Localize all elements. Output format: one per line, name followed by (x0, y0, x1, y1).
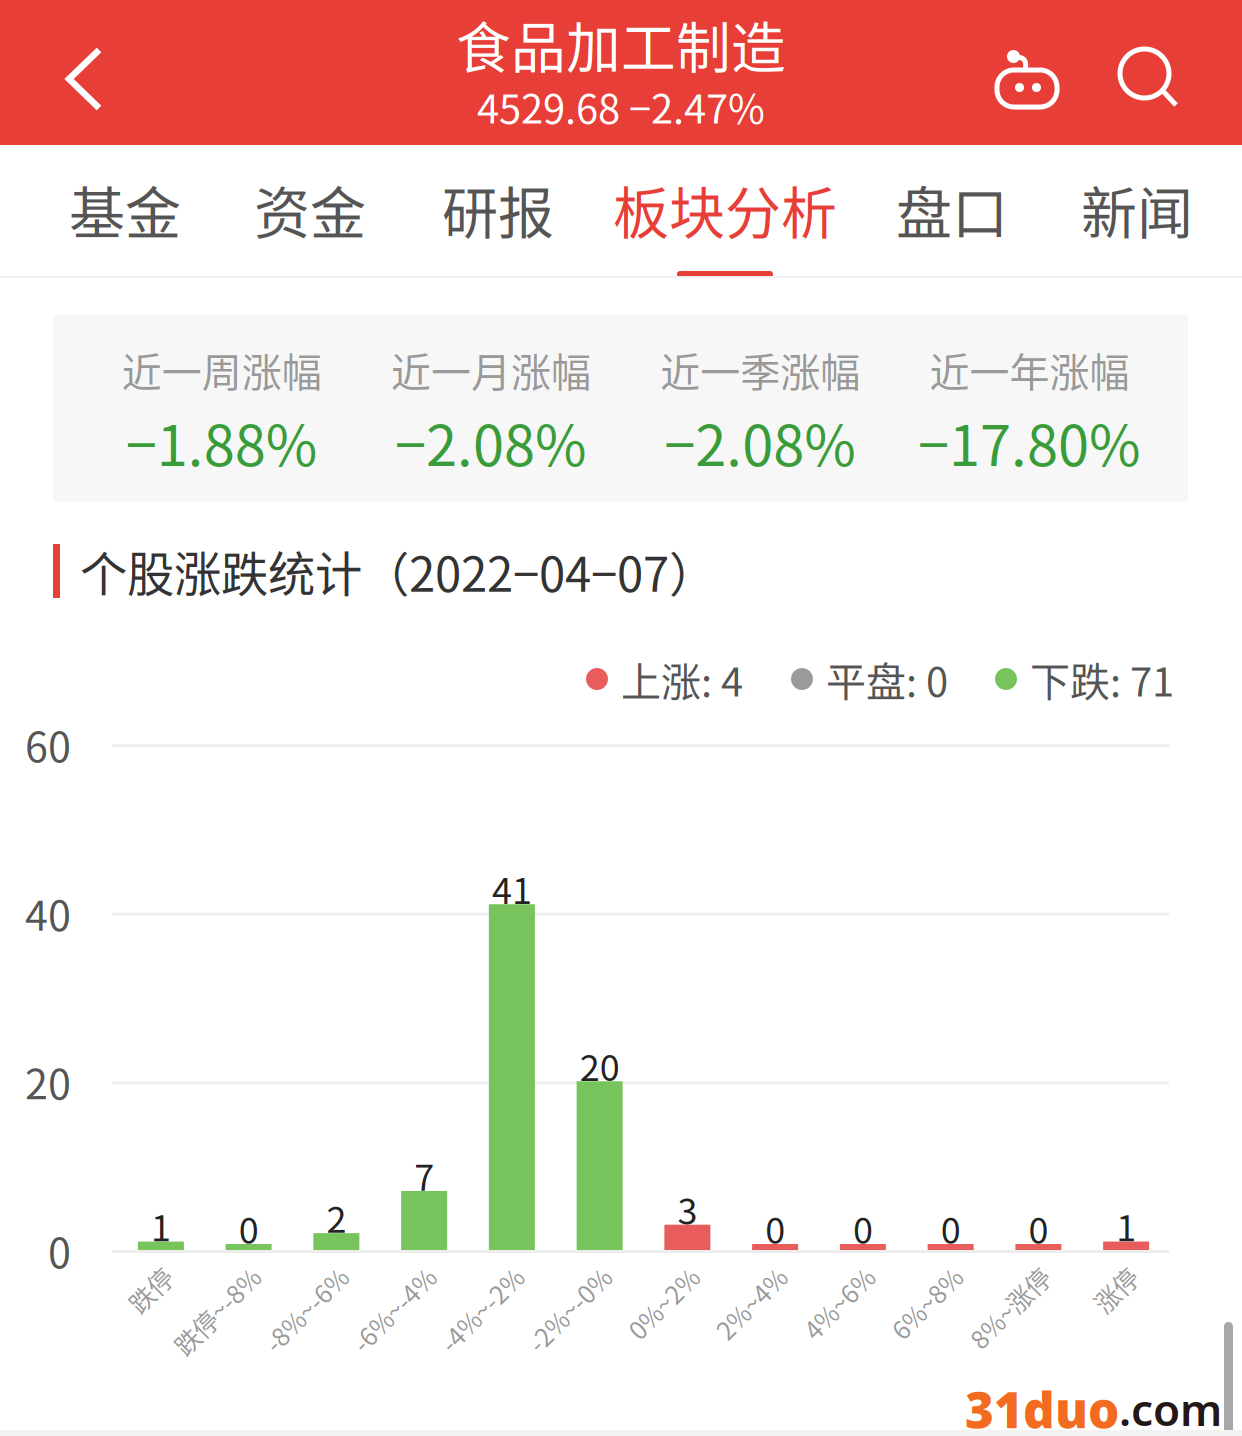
staticText: 近一季涨幅 (660, 340, 860, 398)
staticText: -2%~-0% (501, 1254, 607, 1290)
staticText: -4%~-2% (413, 1254, 519, 1290)
staticText: −2.08% (395, 401, 587, 482)
staticText: 20 (25, 1051, 71, 1111)
staticText: 跌停~-8% (146, 1254, 256, 1290)
button[interactable]: Back (0, 0, 128, 145)
staticText: 7 (414, 1149, 434, 1201)
button[interactable]: 资金 (220, 145, 400, 276)
staticText: 下跌: 71 (1030, 650, 1174, 708)
staticText: 研报 (442, 168, 554, 250)
staticText: 8%~涨停 (944, 1254, 1045, 1290)
staticText: 个股涨跌统计（2022−04−07） (80, 537, 716, 605)
staticText: −2.08% (664, 401, 856, 482)
staticText: 4%~6% (782, 1254, 870, 1290)
staticText: .com (1119, 1380, 1222, 1436)
staticText: 40 (25, 883, 71, 943)
staticText: 0 (1028, 1202, 1048, 1254)
staticText: 0 (941, 1202, 961, 1254)
staticText: 0%~2% (606, 1254, 694, 1290)
staticText: 跌停 (118, 1254, 168, 1290)
button[interactable]: Search (1098, 0, 1222, 145)
staticText: 食品加工制造 (456, 4, 786, 84)
button[interactable]: 基金 (35, 145, 215, 276)
staticText: 近一周涨幅 (122, 340, 322, 398)
staticText: 2 (326, 1191, 346, 1243)
staticText: 板块分析 (613, 168, 837, 250)
staticText: 20 (580, 1039, 620, 1091)
staticText: 60 (25, 714, 71, 774)
button[interactable]: 盘口 (862, 145, 1042, 276)
staticText: 41 (492, 862, 532, 914)
staticText: 平盘: 0 (826, 650, 948, 708)
button[interactable]: 新闻 (1047, 145, 1227, 276)
staticText: 1 (151, 1199, 171, 1252)
staticText: 1 (1116, 1199, 1136, 1252)
staticText: -6%~-4% (325, 1254, 431, 1290)
staticText: 资金 (254, 168, 366, 250)
staticText: 2%~4% (694, 1254, 782, 1290)
staticText: 基金 (69, 168, 181, 250)
staticText: 新闻 (1081, 168, 1193, 250)
staticText: 0 (853, 1202, 873, 1254)
button[interactable]: Assistant (976, 0, 1078, 145)
staticText: 0 (48, 1220, 71, 1280)
button[interactable]: 研报 (408, 145, 588, 276)
staticText: -8%~-6% (237, 1254, 343, 1290)
staticText: −17.80% (918, 401, 1141, 482)
staticText: 近一月涨幅 (391, 340, 591, 398)
staticText: 0 (765, 1202, 785, 1254)
staticText: 盘口 (896, 168, 1008, 250)
staticText: 3 (677, 1183, 697, 1235)
staticText: 近一年涨幅 (929, 340, 1129, 398)
staticText: 上涨: 4 (621, 650, 743, 708)
button[interactable]: 板块分析 (610, 145, 840, 276)
staticText: 4529.68 −2.47% (477, 77, 765, 135)
staticText: 31duo (965, 1376, 1119, 1436)
staticText: 0 (239, 1202, 259, 1254)
staticText: 6%~8% (870, 1254, 958, 1290)
staticText: 涨停 (1083, 1254, 1133, 1290)
staticText: −1.88% (126, 401, 318, 482)
